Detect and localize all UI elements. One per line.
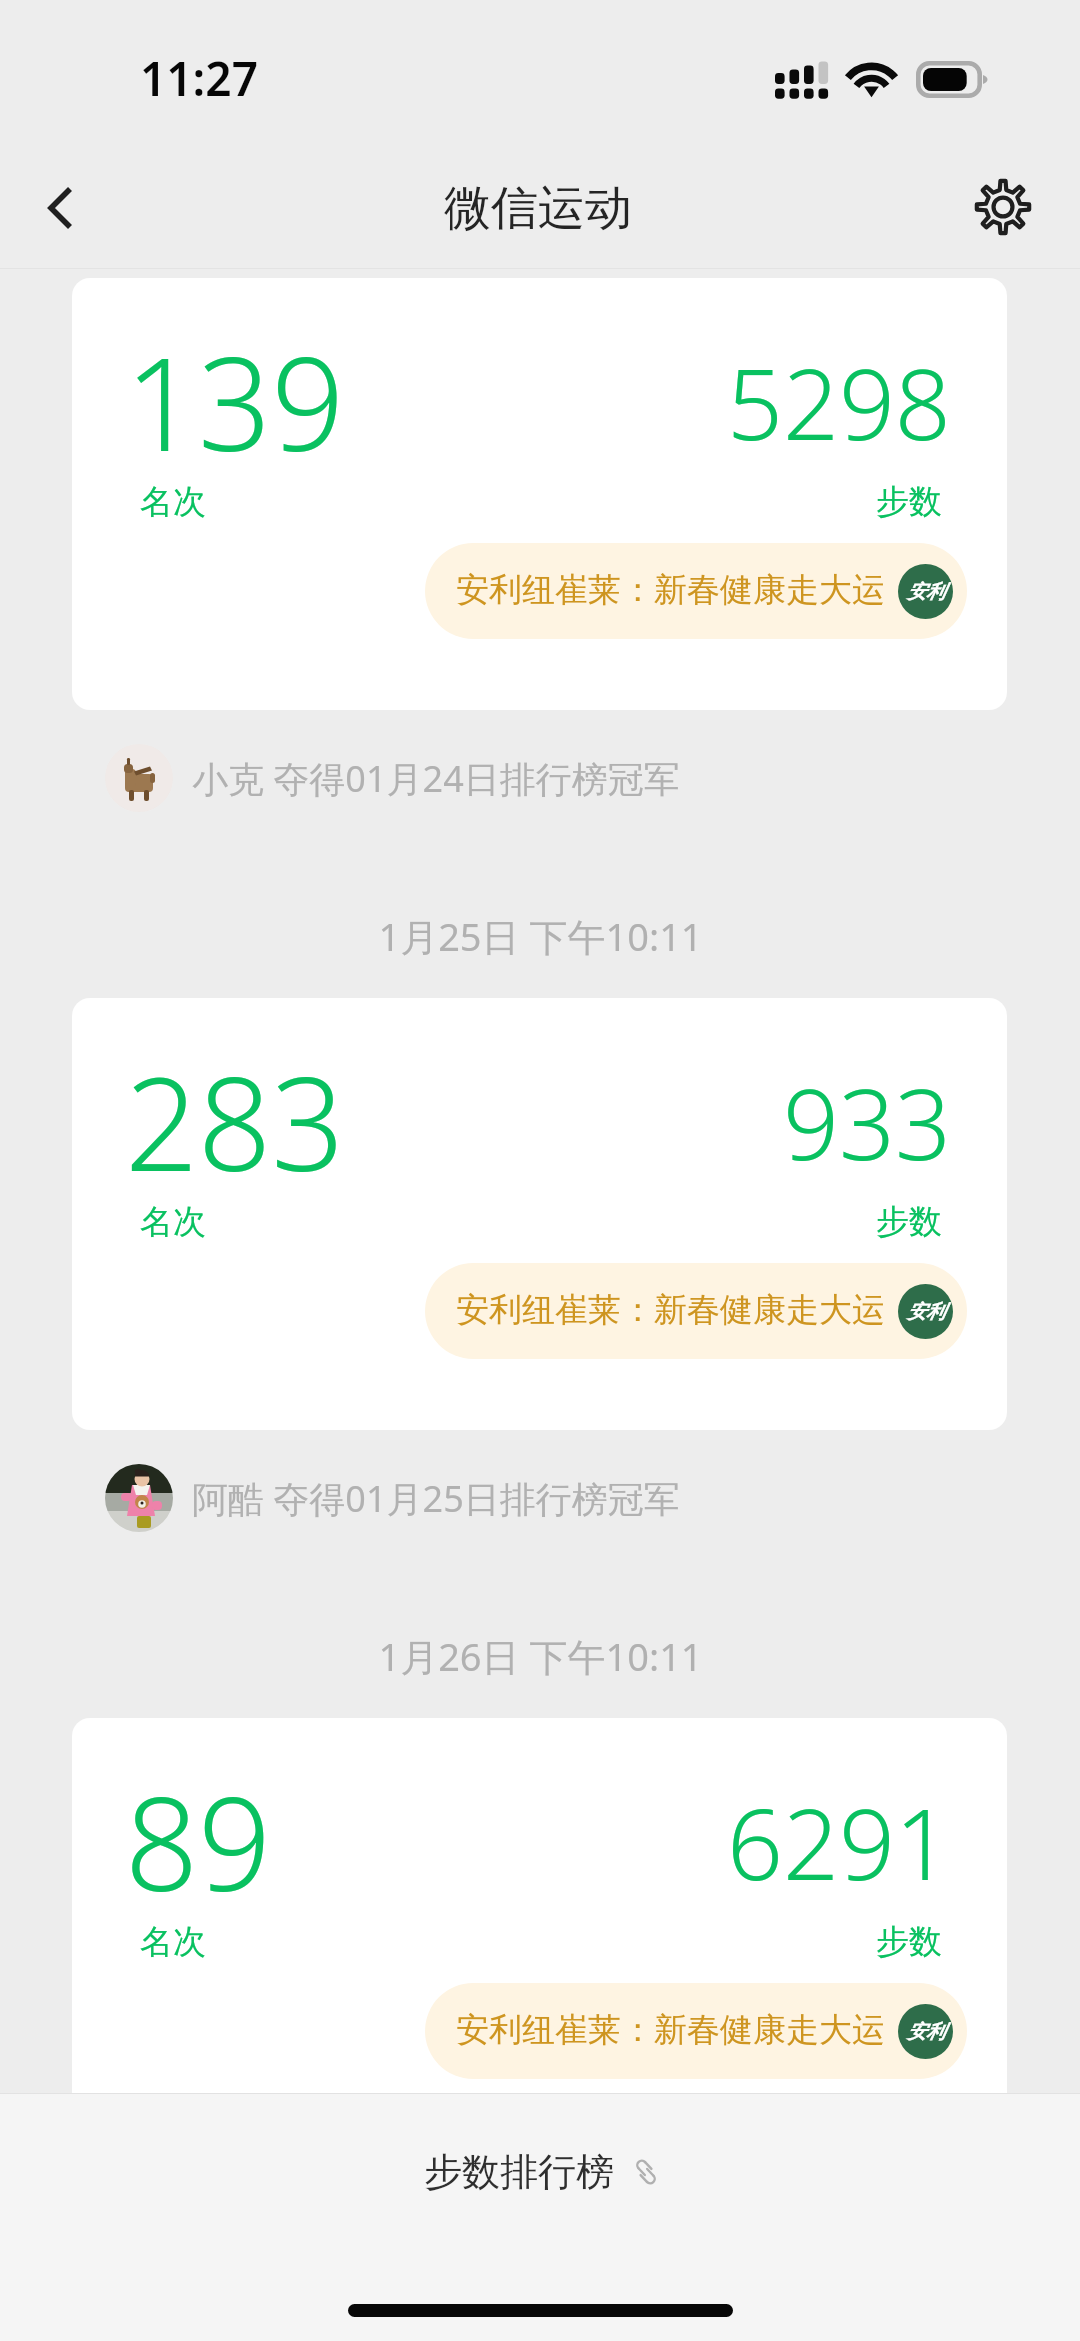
button[interactable]: 283 bbox=[72, 998, 1007, 1430]
staticText: 步数排行榜 bbox=[424, 2148, 614, 2196]
staticText: 933 bbox=[783, 1055, 951, 1188]
staticText: 89 bbox=[125, 1754, 272, 1928]
button[interactable]: 小克 夺得01月24日排行榜冠军 bbox=[105, 744, 680, 812]
staticText: 安利纽崔莱：新春健康走大运 bbox=[456, 2009, 885, 2051]
staticText: 11:27 bbox=[140, 47, 258, 110]
staticText: 安利 bbox=[907, 580, 945, 604]
staticText: 安利纽崔莱：新春健康走大运 bbox=[456, 1289, 885, 1331]
staticText: 阿酷 夺得01月25日排行榜冠军 bbox=[192, 1474, 680, 1523]
button[interactable]: 阿酷 夺得01月25日排行榜冠军 bbox=[105, 1464, 680, 1532]
button[interactable]: Settings bbox=[948, 152, 1058, 262]
button[interactable]: 安利纽崔莱：新春健康走大运 bbox=[425, 1983, 967, 2079]
button[interactable]: 139 bbox=[72, 278, 1007, 710]
staticText: 安利 bbox=[907, 2020, 945, 2044]
staticText: 283 bbox=[125, 1034, 345, 1208]
staticText: 安利 bbox=[907, 1300, 945, 1324]
staticText: 139 bbox=[125, 314, 345, 488]
staticText: 名次 bbox=[140, 1921, 206, 1963]
staticText: 6291 bbox=[727, 1775, 951, 1908]
staticText: 1月25日 下午10:11 bbox=[378, 910, 703, 962]
staticText: 安利纽崔莱：新春健康走大运 bbox=[456, 569, 885, 611]
staticText: 步数 bbox=[876, 1921, 942, 1963]
staticText: 5298 bbox=[727, 335, 951, 468]
staticText: 小克 夺得01月24日排行榜冠军 bbox=[192, 754, 680, 803]
staticText: 名次 bbox=[140, 481, 206, 523]
button[interactable]: 步数排行榜 bbox=[424, 2142, 661, 2202]
button[interactable]: 安利纽崔莱：新春健康走大运 bbox=[425, 1263, 967, 1359]
staticText: 步数 bbox=[876, 1201, 942, 1243]
staticText: 步数 bbox=[876, 481, 942, 523]
staticText: 微信运动 bbox=[444, 179, 632, 238]
button[interactable]: 安利纽崔莱：新春健康走大运 bbox=[425, 543, 967, 639]
staticText: 1月26日 下午10:11 bbox=[378, 1630, 703, 1682]
button[interactable]: Back bbox=[7, 155, 117, 265]
staticText: 名次 bbox=[140, 1201, 206, 1243]
button[interactable]: 89 bbox=[72, 1718, 1007, 2150]
